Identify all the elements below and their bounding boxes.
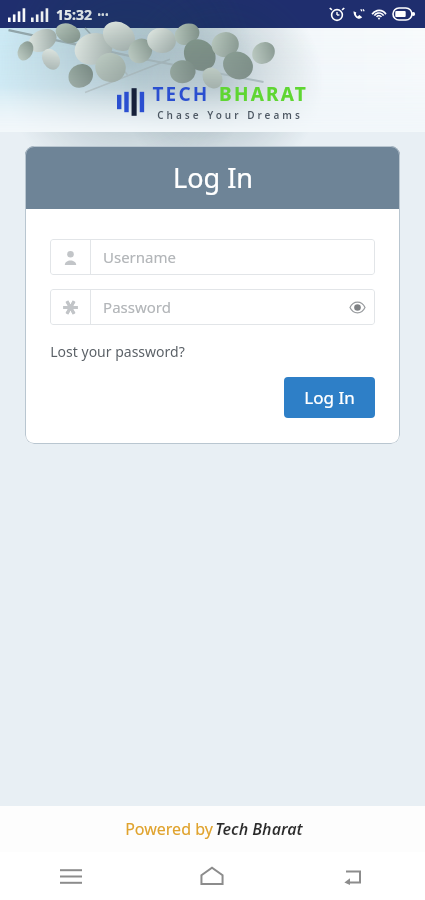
staticText: Lost your password? — [50, 342, 185, 361]
button[interactable]: Username — [50, 239, 375, 275]
staticText: Password — [103, 297, 171, 317]
staticText: TECH — [152, 81, 210, 107]
staticText: Powered by — [123, 818, 215, 840]
staticText: ••• — [97, 8, 109, 22]
button[interactable]: Log In — [284, 377, 375, 418]
staticText: 15:32 — [56, 5, 92, 24]
button[interactable]: Lost your password? — [50, 342, 185, 361]
button[interactable]: Password — [50, 289, 375, 325]
staticText: BHARAT — [219, 81, 308, 107]
button[interactable]: Home — [185, 852, 239, 900]
button[interactable]: Recent apps — [44, 852, 98, 900]
button[interactable]: Show password — [339, 289, 375, 325]
staticText: Log In — [173, 159, 253, 196]
staticText: Username — [103, 247, 176, 267]
staticText: Tech Bharat — [215, 818, 303, 840]
button[interactable]: Back — [327, 852, 381, 900]
staticText: Chase Your Dreams — [157, 108, 303, 122]
staticText: Log In — [304, 386, 355, 409]
